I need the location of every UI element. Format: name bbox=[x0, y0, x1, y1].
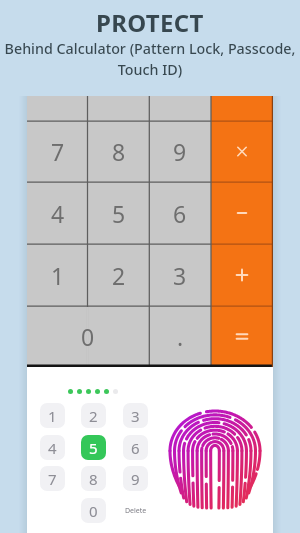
staticText: PROTECT bbox=[96, 6, 204, 39]
button[interactable]: 1 bbox=[27, 244, 88, 306]
staticText: 9 bbox=[131, 469, 140, 489]
button[interactable]: Add bbox=[211, 244, 273, 306]
staticText: Behind Calculator (Pattern Lock, Passcod… bbox=[4, 39, 296, 80]
staticText: Delete bbox=[125, 506, 147, 516]
button[interactable]: 3 bbox=[123, 403, 148, 428]
button[interactable]: 4 bbox=[27, 182, 88, 244]
staticText: 1 bbox=[48, 406, 57, 426]
staticText: . bbox=[177, 321, 184, 352]
button[interactable]: 4 bbox=[40, 435, 65, 460]
button[interactable]: 1 bbox=[40, 403, 65, 428]
staticText: 4 bbox=[48, 438, 57, 458]
button[interactable]: 2 bbox=[88, 244, 150, 306]
staticText: 0 bbox=[81, 321, 95, 352]
button[interactable]: Subtract bbox=[211, 182, 273, 244]
button[interactable]: Delete bbox=[123, 498, 148, 523]
staticText: 3 bbox=[173, 260, 187, 291]
staticText: 5 bbox=[89, 438, 98, 458]
button[interactable]: 6 bbox=[149, 182, 211, 244]
button[interactable]: Equals bbox=[211, 306, 273, 367]
staticText: 2 bbox=[89, 406, 98, 426]
staticText: 7 bbox=[48, 469, 57, 489]
staticText: 3 bbox=[131, 406, 140, 426]
button[interactable]: 5 bbox=[88, 182, 150, 244]
button[interactable]: 3 bbox=[149, 244, 211, 306]
button[interactable]: 6 bbox=[123, 435, 148, 460]
button[interactable]: 2 bbox=[81, 403, 106, 428]
staticText: 6 bbox=[131, 438, 140, 458]
button[interactable]: 9 bbox=[123, 466, 148, 491]
button[interactable]: 8 bbox=[88, 121, 150, 182]
button[interactable]: 8 bbox=[81, 466, 106, 491]
staticText: 6 bbox=[173, 198, 187, 229]
button[interactable]: 5 bbox=[81, 435, 106, 460]
staticText: 7 bbox=[51, 136, 65, 167]
staticText: 4 bbox=[51, 198, 65, 229]
staticText: 8 bbox=[89, 469, 98, 489]
button[interactable]: . bbox=[149, 306, 211, 367]
staticText: 9 bbox=[173, 136, 187, 167]
button[interactable]: Multiply bbox=[211, 121, 273, 182]
button[interactable]: 0 bbox=[81, 498, 106, 523]
staticText: 5 bbox=[112, 198, 126, 229]
button[interactable]: 9 bbox=[149, 121, 211, 182]
button[interactable]: 0 bbox=[27, 306, 149, 367]
staticText: 0 bbox=[89, 501, 98, 521]
button[interactable]: 7 bbox=[27, 121, 88, 182]
button[interactable]: 7 bbox=[40, 466, 65, 491]
staticText: 1 bbox=[51, 260, 65, 291]
staticText: 2 bbox=[112, 260, 126, 291]
staticText: 8 bbox=[112, 136, 126, 167]
